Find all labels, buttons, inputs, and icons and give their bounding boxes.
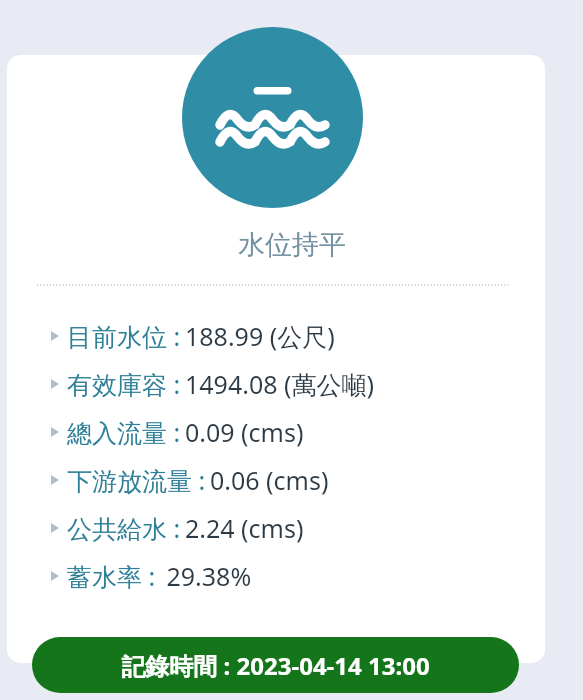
button[interactable]: 總入流量 : [0,408,583,456]
button[interactable]: 有效庫容 : [0,360,583,408]
staticText: 下游放流量 : [67,463,206,497]
staticText: 0.09 (cms) [185,415,304,449]
button[interactable]: 記錄時間 : 2023-04-14 13:00 [32,637,519,693]
staticText: 蓄水率 : [67,559,156,593]
staticText: 目前水位 : [67,319,181,353]
button[interactable]: 下游放流量 : [0,456,583,504]
staticText: 188.99 (公尺) [185,319,335,353]
staticText: 29.38% [160,559,252,593]
staticText: 0.06 (cms) [210,463,329,497]
staticText: 總入流量 : [67,415,181,449]
button[interactable]: 公共給水 : [0,504,583,552]
staticText: 水位持平 [238,228,346,262]
button[interactable]: 目前水位 : [0,312,583,360]
staticText: 2.24 (cms) [185,511,304,545]
staticText: 記錄時間 : 2023-04-14 13:00 [121,649,430,682]
staticText: 公共給水 : [67,511,181,545]
staticText: 有效庫容 : [67,367,181,401]
button[interactable]: 蓄水率 : [0,552,583,600]
staticText: 1494.08 (萬公噸) [185,367,375,401]
